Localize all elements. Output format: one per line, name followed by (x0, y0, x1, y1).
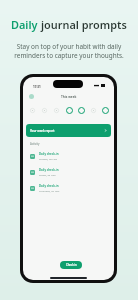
button[interactable]: Check in (60, 261, 82, 269)
staticText: Daily check-in (39, 184, 59, 188)
staticText: Friday, 25 Nov (39, 173, 56, 176)
staticText: This week (61, 95, 77, 99)
button[interactable]: Daily check-in (23, 164, 114, 180)
staticText: Daily (11, 17, 41, 32)
button[interactable]: Your week report (26, 124, 111, 137)
staticText: 17:31 (33, 85, 41, 89)
button[interactable]: Daily check-in (23, 180, 114, 196)
staticText: Check in (66, 263, 77, 267)
staticText: journal prompts (41, 17, 127, 32)
staticText: Daily check-in (39, 168, 59, 172)
staticText: Daily check-in (39, 152, 59, 156)
staticText: Stay on top of your habit with daily rem… (14, 42, 124, 60)
button[interactable]: Daily check-in (23, 148, 114, 164)
staticText: Thursday, 24 Nov (39, 189, 60, 192)
staticText: Activity (30, 142, 40, 146)
staticText: Sunday, 28 Nov (39, 157, 58, 160)
staticText: Your week report (30, 129, 55, 133)
